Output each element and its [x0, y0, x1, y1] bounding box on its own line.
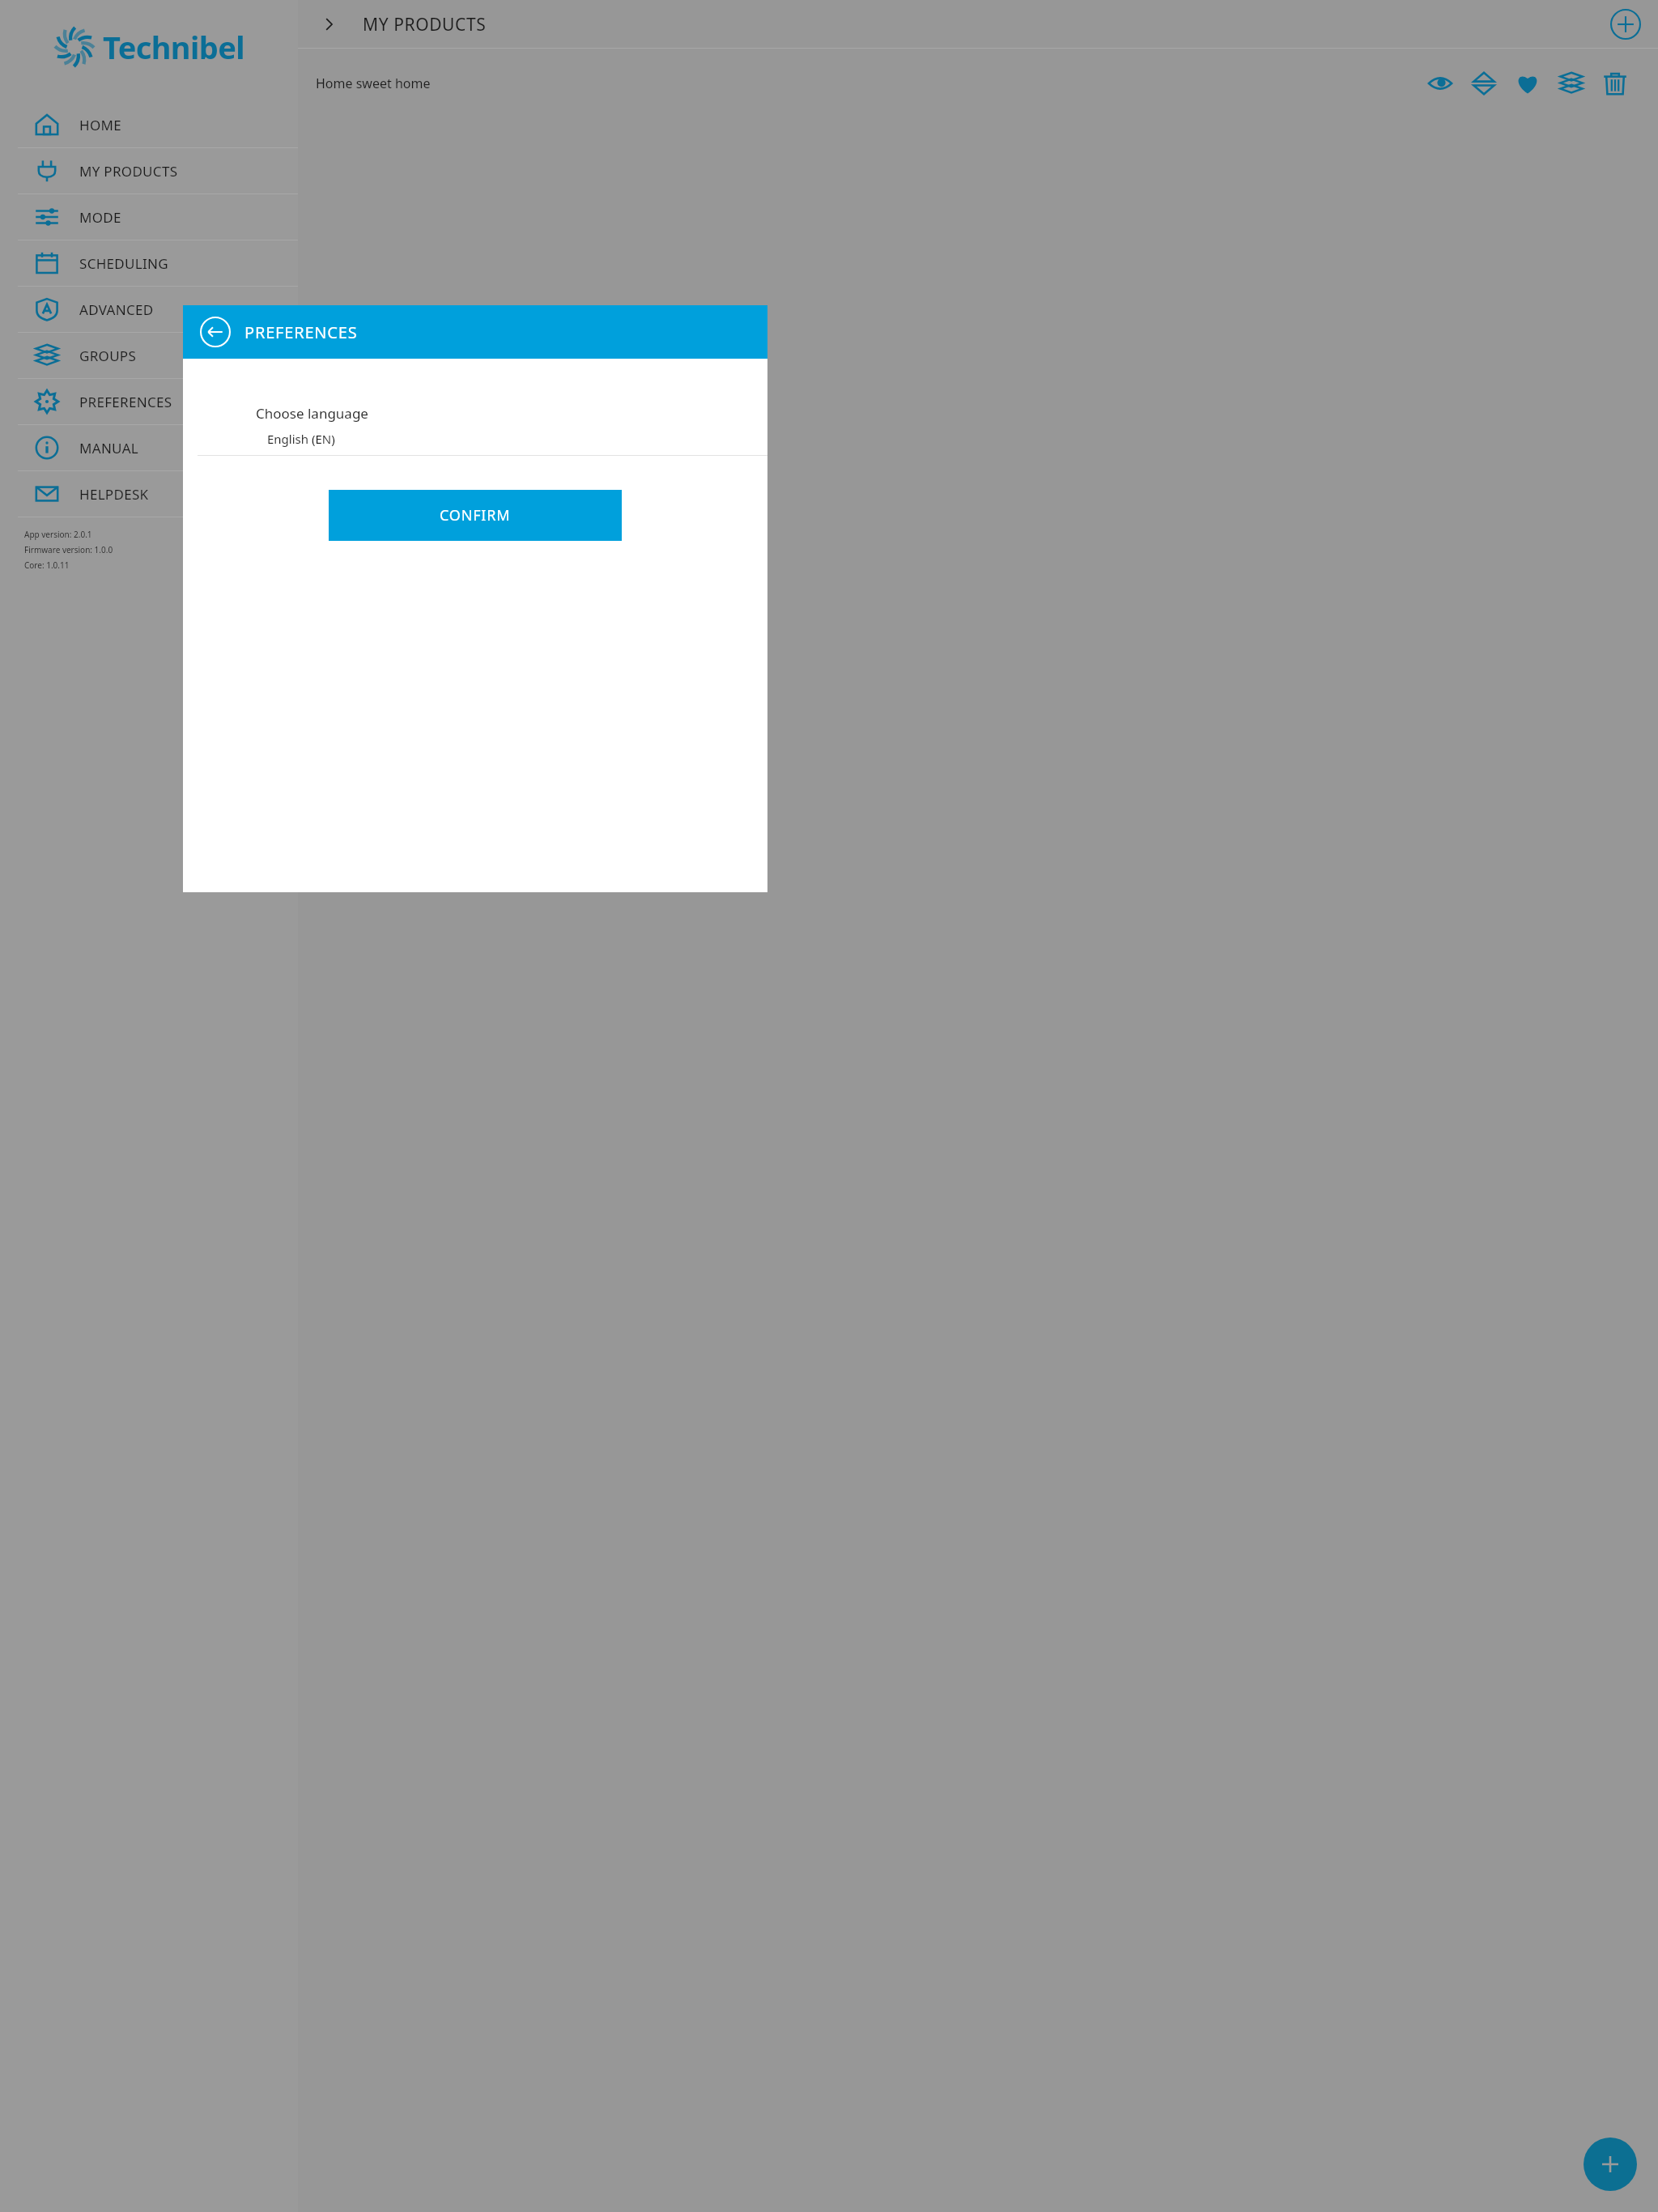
staticText: MODE — [79, 208, 121, 227]
button[interactable]: GROUPS — [0, 333, 298, 378]
staticText: Home sweet home — [316, 74, 431, 92]
staticText: MY PRODUCTS — [79, 162, 178, 181]
staticText: English (EN) — [267, 431, 335, 447]
staticText: HELPDESK — [79, 485, 149, 504]
staticText: PREFERENCES — [244, 321, 358, 343]
button[interactable]: PREFERENCES — [0, 379, 298, 424]
button[interactable]: eye — [1422, 65, 1459, 102]
staticText: MANUAL — [79, 439, 139, 457]
staticText: App version: 2.0.1 — [24, 529, 92, 540]
staticText: PREFERENCES — [79, 393, 172, 411]
staticText: SCHEDULING — [79, 254, 168, 273]
button[interactable]: MY PRODUCTS — [0, 148, 298, 194]
staticText: MY PRODUCTS — [363, 13, 487, 36]
staticText: Core: 1.0.11 — [24, 559, 70, 571]
staticText: HOME — [79, 116, 121, 134]
button[interactable]: HELPDESK — [0, 471, 298, 517]
button[interactable]: Add — [1608, 6, 1643, 42]
staticText: Choose language — [256, 404, 368, 423]
button[interactable]: ADVANCED — [0, 287, 298, 332]
button[interactable]: MANUAL — [0, 425, 298, 470]
button[interactable]: Open menu — [312, 8, 345, 40]
button[interactable]: Home sweet home — [298, 49, 1658, 118]
button[interactable]: Back — [198, 314, 233, 350]
button[interactable]: heart — [1509, 65, 1546, 102]
button[interactable]: MODE — [0, 194, 298, 240]
button[interactable]: CONFIRM — [329, 490, 622, 541]
button[interactable]: updown — [1465, 65, 1503, 102]
button[interactable]: trash — [1596, 65, 1634, 102]
button[interactable]: HOME — [0, 102, 298, 147]
button[interactable]: layers — [1553, 65, 1590, 102]
staticText: CONFIRM — [440, 505, 511, 525]
staticText: GROUPS — [79, 347, 137, 365]
staticText: ADVANCED — [79, 300, 154, 319]
staticText: Firmware version: 1.0.0 — [24, 544, 113, 555]
button[interactable]: Add product — [1584, 2138, 1637, 2191]
staticText: Technibel — [103, 26, 244, 68]
button[interactable]: English (EN) — [267, 431, 335, 447]
button[interactable]: SCHEDULING — [0, 240, 298, 286]
